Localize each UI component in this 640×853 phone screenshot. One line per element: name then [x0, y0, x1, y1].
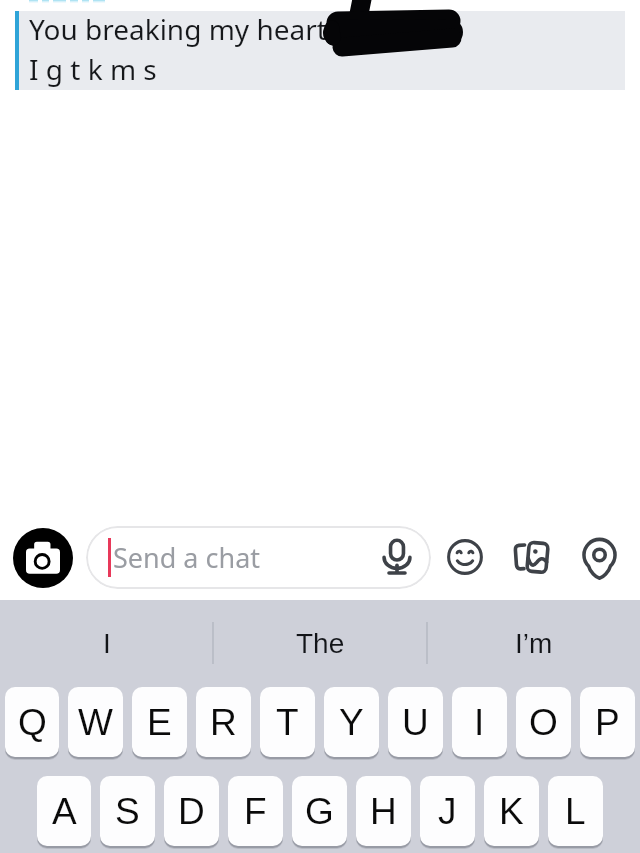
staticText: T — [276, 702, 299, 743]
button[interactable]: D — [164, 776, 219, 846]
button[interactable]: Stickers — [436, 528, 494, 586]
button[interactable]: F — [228, 776, 283, 846]
button[interactable]: Q — [5, 687, 59, 757]
staticText: Send a chat — [113, 539, 261, 576]
staticText: S — [115, 791, 140, 832]
staticText: R — [210, 702, 237, 743]
button[interactable]: P — [580, 687, 635, 757]
button[interactable]: I’m — [427, 600, 640, 687]
staticText: Q — [18, 702, 47, 743]
staticText: You breaking my heart — [29, 10, 327, 48]
staticText: I’m — [515, 628, 553, 659]
button[interactable]: L — [548, 776, 603, 846]
staticText: U — [402, 702, 429, 743]
button[interactable]: Photos — [504, 528, 562, 586]
button[interactable]: H — [356, 776, 411, 846]
button[interactable]: U — [388, 687, 443, 757]
staticText: F — [244, 791, 267, 832]
button[interactable]: E — [132, 687, 187, 757]
staticText: W — [78, 702, 113, 743]
button[interactable]: G — [292, 776, 347, 846]
staticText: K — [499, 791, 524, 832]
staticText: D — [178, 791, 205, 832]
button[interactable]: I — [452, 687, 507, 757]
button[interactable]: T — [260, 687, 315, 757]
button[interactable]: S — [100, 776, 155, 846]
button[interactable]: J — [420, 776, 475, 846]
button[interactable]: Y — [324, 687, 379, 757]
button[interactable]: W — [68, 687, 123, 757]
staticText: E — [147, 702, 172, 743]
button[interactable]: The — [214, 600, 427, 687]
staticText: L — [565, 791, 586, 832]
staticText: H — [370, 791, 397, 832]
button[interactable]: Location — [570, 528, 628, 586]
button[interactable]: R — [196, 687, 251, 757]
button[interactable]: Camera — [13, 528, 73, 588]
staticText: O — [529, 702, 558, 743]
staticText: Y — [339, 702, 364, 743]
staticText: I — [474, 702, 485, 743]
button[interactable]: O — [516, 687, 571, 757]
staticText: The — [296, 628, 345, 659]
button[interactable]: A — [37, 776, 91, 846]
staticText: A — [52, 791, 77, 832]
staticText: J — [438, 791, 457, 832]
staticText: G — [305, 791, 334, 832]
staticText: P — [595, 702, 620, 743]
button[interactable]: Voice message — [368, 528, 426, 586]
button[interactable]: K — [484, 776, 539, 846]
staticText: I — [103, 628, 111, 659]
button[interactable]: I — [0, 600, 214, 687]
staticText: I g t k m s — [29, 50, 157, 88]
button[interactable]: Send a chat — [86, 526, 431, 589]
